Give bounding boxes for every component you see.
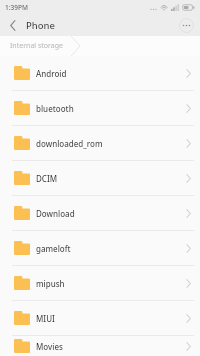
staticText: Internal storage xyxy=(10,41,63,51)
button[interactable]: Back xyxy=(0,14,26,36)
staticText: 1:39PM xyxy=(5,3,28,12)
staticText: DCIM xyxy=(36,173,186,184)
button[interactable]: Android xyxy=(0,56,200,90)
staticText: MIUI xyxy=(36,313,186,324)
button[interactable]: DCIM xyxy=(0,161,200,195)
staticText: gameloft xyxy=(36,243,186,254)
button[interactable]: mipush xyxy=(0,266,200,300)
button[interactable]: More options xyxy=(179,18,194,33)
staticText: Movies xyxy=(36,341,186,352)
button[interactable]: Movies xyxy=(0,336,200,356)
staticText: mipush xyxy=(36,278,186,289)
staticText: bluetooth xyxy=(36,103,186,114)
button[interactable]: Download xyxy=(0,196,200,230)
button[interactable]: gameloft xyxy=(0,231,200,265)
staticText: Android xyxy=(36,68,186,79)
button[interactable]: downloaded_rom xyxy=(0,126,200,160)
staticText: Download xyxy=(36,208,186,219)
staticText: downloaded_rom xyxy=(36,138,186,149)
staticText: Phone xyxy=(26,19,55,32)
button[interactable]: Internal storage xyxy=(0,36,80,56)
button[interactable]: bluetooth xyxy=(0,91,200,125)
button[interactable]: MIUI xyxy=(0,301,200,335)
